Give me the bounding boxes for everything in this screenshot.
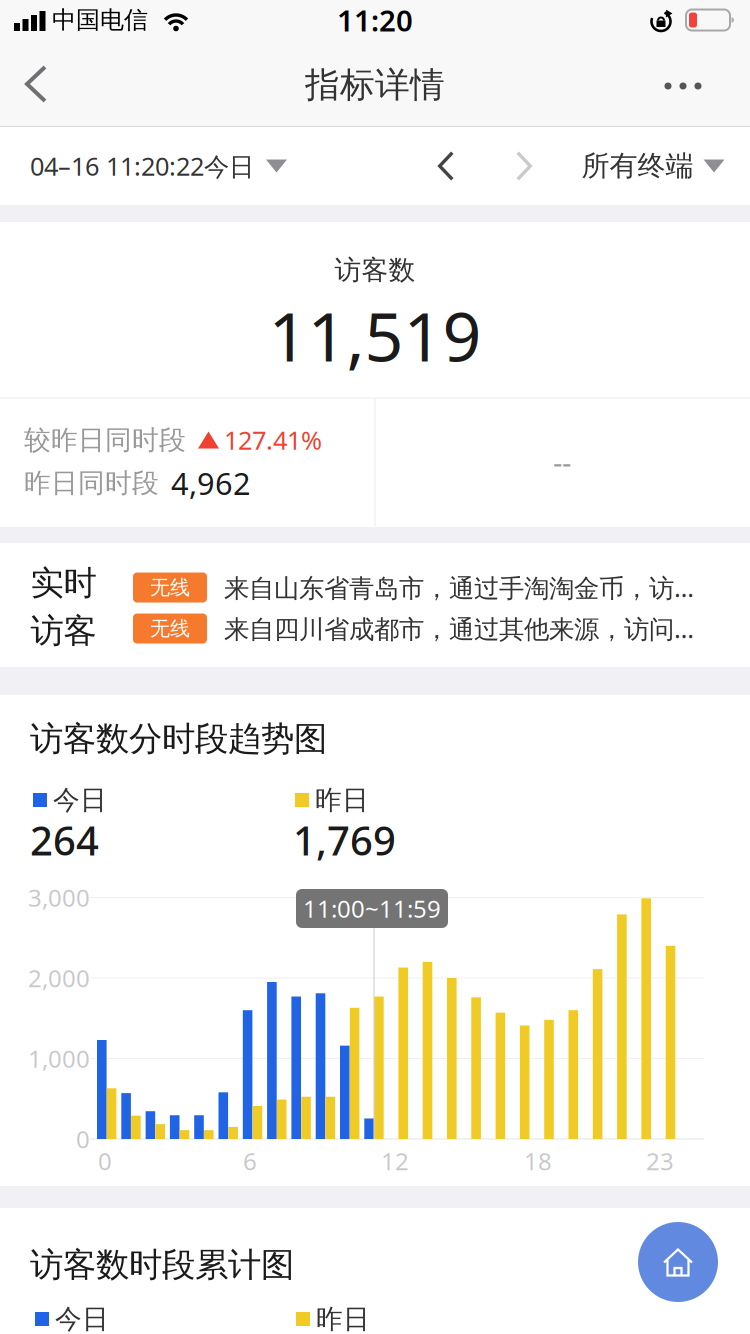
staticText: 2,000 xyxy=(28,962,90,994)
staticText: 11,519 xyxy=(268,290,481,380)
staticText: 6 xyxy=(243,1145,257,1177)
button[interactable]: 无线 xyxy=(0,571,750,604)
staticText: 昨日 xyxy=(316,1303,370,1334)
staticText: 访客数分时段趋势图 xyxy=(30,718,327,759)
staticText: 23 xyxy=(646,1145,674,1177)
staticText: 04–16 11:20:22今日 xyxy=(30,149,254,183)
staticText: 实时 xyxy=(30,563,96,603)
staticText: 无线 xyxy=(150,575,190,600)
staticText: 指标详情 xyxy=(305,64,445,106)
button[interactable]: 所有终端 xyxy=(581,127,724,205)
button[interactable]: 04–16 11:20:22今日 xyxy=(0,127,750,205)
button[interactable] xyxy=(648,56,718,116)
staticText: 昨日 xyxy=(315,784,369,816)
button[interactable]: 无线 xyxy=(0,612,750,645)
staticText: 11:20 xyxy=(337,0,413,39)
button[interactable] xyxy=(499,127,549,205)
staticText: 12 xyxy=(381,1145,409,1177)
staticText: 今日 xyxy=(53,784,107,816)
staticText: 264 xyxy=(30,813,99,866)
staticText: 访客 xyxy=(30,610,96,651)
staticText: 较昨日同时段 xyxy=(24,424,186,456)
staticText: 0 xyxy=(98,1145,112,1177)
staticText: 18 xyxy=(524,1145,552,1177)
staticText: 访客数 xyxy=(334,254,415,286)
staticText: -- xyxy=(553,442,571,481)
staticText: 访客数时段累计图 xyxy=(30,1244,294,1285)
staticText: 3,000 xyxy=(28,882,90,913)
staticText: 0 xyxy=(76,1123,90,1155)
button[interactable] xyxy=(421,127,471,205)
staticText: 1,769 xyxy=(293,813,396,866)
staticText: 11:00~11:59 xyxy=(303,893,441,924)
staticText: 中国电信 xyxy=(52,5,148,35)
staticText: 来自山东省青岛市，通过手淘淘金币，访… xyxy=(224,571,694,604)
button[interactable] xyxy=(1,43,71,125)
staticText: 来自四川省成都市，通过其他来源，访问… xyxy=(224,612,694,645)
button[interactable] xyxy=(638,1222,718,1302)
staticText: 昨日同时段 xyxy=(24,467,159,499)
staticText: 4,962 xyxy=(171,463,251,503)
staticText: 所有终端 xyxy=(581,149,693,183)
staticText: 1,000 xyxy=(28,1043,90,1074)
staticText: 127.41% xyxy=(224,423,322,457)
staticText: 无线 xyxy=(150,616,190,641)
staticText: 今日 xyxy=(55,1303,109,1334)
